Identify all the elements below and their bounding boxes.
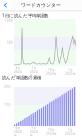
staticText: 10月 xyxy=(48,68,55,72)
staticText: 2025年 xyxy=(65,72,76,75)
staticText: 1月 xyxy=(68,128,73,132)
staticText: 2024年 xyxy=(14,70,22,77)
staticText: 2024年 xyxy=(46,72,57,75)
staticText: 2024年 xyxy=(46,132,57,135)
staticText: 7月 xyxy=(31,66,36,70)
staticText: 1日に読んだ平均単語数 xyxy=(2,12,48,18)
staticText: 1月 xyxy=(68,68,73,72)
staticText: 2024年 xyxy=(30,70,38,77)
staticText: 読んだ単語数の累積 xyxy=(2,75,41,80)
staticText: 4月 xyxy=(15,66,20,70)
staticText: 10万 xyxy=(4,103,11,107)
staticText: 1000 xyxy=(5,19,13,23)
staticText: 500 xyxy=(7,41,13,45)
staticText: 4月 xyxy=(15,126,20,130)
staticText: 10月 xyxy=(48,128,55,132)
staticText: 2024年 xyxy=(14,130,22,137)
staticText: 20万 xyxy=(4,85,11,89)
button[interactable]: Back xyxy=(0,0,11,10)
staticText: 7月 xyxy=(31,126,36,130)
staticText: 2025年 xyxy=(65,132,76,135)
staticText: 2024年 xyxy=(30,130,38,137)
staticText: ワードカウンター xyxy=(21,2,61,8)
